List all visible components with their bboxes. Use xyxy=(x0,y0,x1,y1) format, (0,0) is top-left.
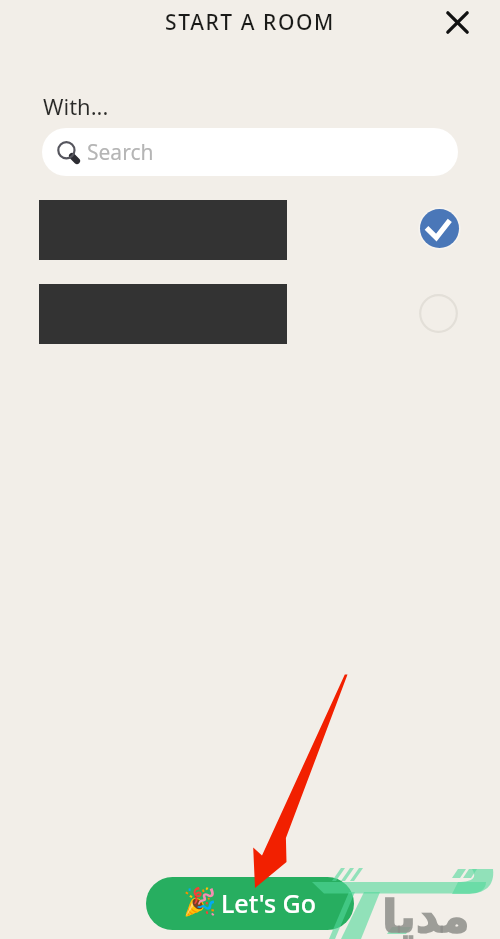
staticText: START A ROOM xyxy=(165,8,335,37)
button[interactable] xyxy=(0,284,500,344)
staticText: Let's Go xyxy=(221,886,317,920)
staticText: Search xyxy=(87,138,154,167)
button[interactable] xyxy=(0,200,500,260)
button[interactable]: 🎉 xyxy=(146,877,354,930)
staticText: مدیا xyxy=(382,890,470,939)
button[interactable]: Search xyxy=(42,128,458,176)
staticText: 🎉 xyxy=(183,886,217,918)
button[interactable]: Close xyxy=(435,0,479,44)
staticText: With... xyxy=(43,91,109,121)
